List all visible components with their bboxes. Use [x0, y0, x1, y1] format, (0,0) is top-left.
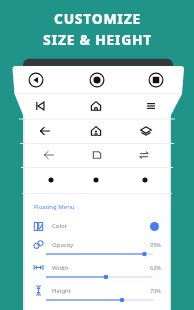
staticText: Height	[52, 287, 71, 295]
staticText: Opacity	[52, 241, 74, 249]
button[interactable]: Color	[23, 216, 171, 236]
button[interactable]: Swap	[133, 144, 155, 166]
button[interactable]: Back	[40, 169, 62, 191]
staticText: 70%	[150, 287, 161, 294]
button[interactable]: Layers	[135, 120, 157, 142]
button[interactable]: Home	[85, 120, 107, 142]
staticText: 62%	[150, 264, 161, 271]
staticText: Color	[52, 222, 68, 230]
staticText: Floating Menu	[34, 203, 75, 211]
button[interactable]: Menu	[140, 95, 162, 117]
button[interactable]: Home	[85, 169, 107, 191]
button[interactable]: Skip previous	[29, 95, 51, 117]
staticText: CUSTOMIZE	[54, 9, 141, 28]
button[interactable]: Pick color	[150, 222, 159, 231]
button[interactable]: Home	[86, 69, 108, 91]
staticText: Width	[52, 264, 69, 272]
staticText: SIZE & HEIGHT	[43, 30, 152, 49]
button[interactable]: Recents	[145, 69, 167, 91]
button[interactable]: Recents	[134, 169, 156, 191]
button[interactable]: Home	[85, 95, 107, 117]
button[interactable]: Opacity	[23, 236, 171, 259]
button[interactable]: Back	[38, 144, 60, 166]
button[interactable]: Width	[23, 259, 171, 282]
button[interactable]: Back	[34, 120, 56, 142]
staticText: 95%	[150, 241, 161, 248]
button[interactable]: Height	[23, 282, 171, 305]
button[interactable]: Back	[25, 69, 47, 91]
button[interactable]: Recents	[86, 144, 108, 166]
